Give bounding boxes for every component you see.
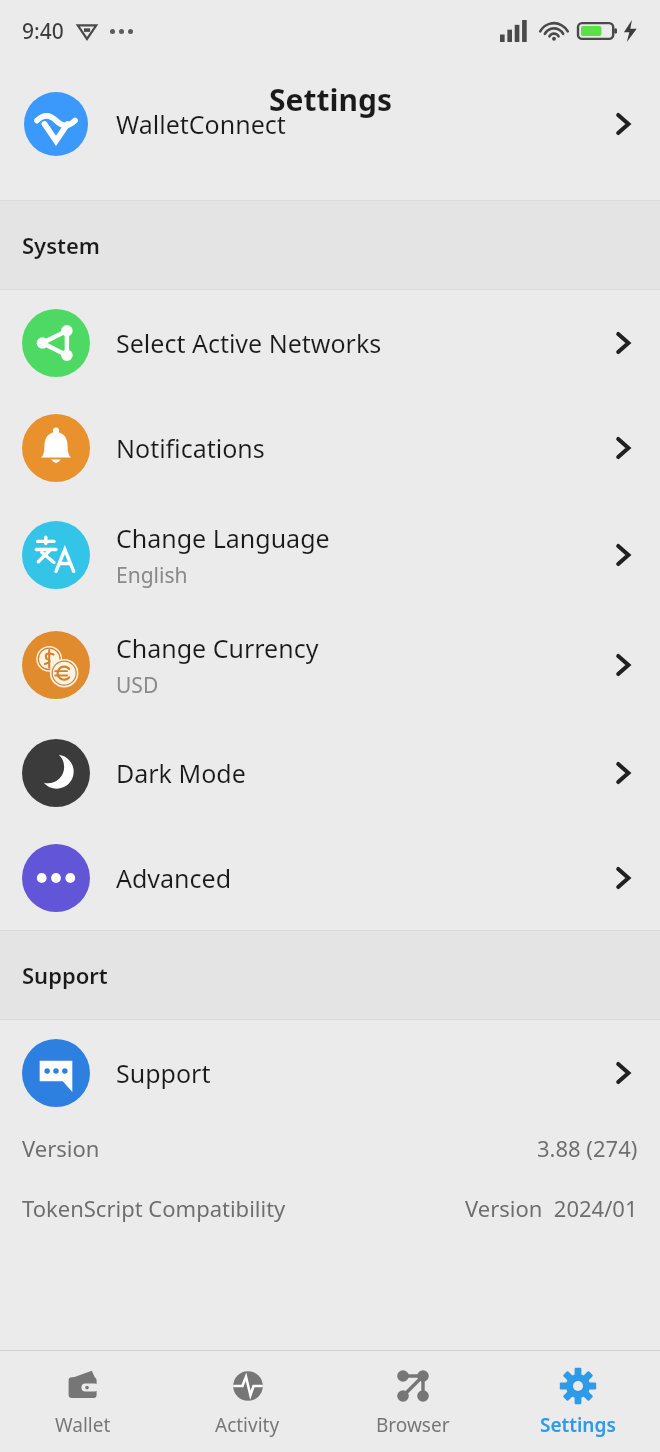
staticText: Support — [22, 960, 108, 990]
staticText: Version 2024/01 — [465, 1193, 638, 1223]
staticText: Change Language — [116, 521, 330, 555]
staticText: Change Currency — [116, 631, 319, 665]
staticText: Dark Mode — [116, 756, 246, 790]
staticText: Version — [22, 1133, 100, 1163]
staticText: Advanced — [116, 861, 232, 895]
button[interactable]: Support — [0, 1020, 660, 1125]
button[interactable]: Change Language — [0, 500, 660, 610]
button[interactable]: Advanced — [0, 825, 660, 930]
button[interactable]: Settings — [495, 1351, 660, 1452]
button[interactable]: Browser — [330, 1351, 495, 1452]
staticText: 9:40 — [22, 17, 64, 46]
staticText: Notifications — [116, 431, 265, 465]
button[interactable]: Notifications — [0, 395, 660, 500]
staticText: Browser — [376, 1412, 450, 1438]
staticText: 3.88 (274) — [537, 1133, 638, 1163]
staticText: Support — [116, 1056, 211, 1090]
staticText: USD — [116, 671, 159, 700]
button[interactable]: Wallet — [0, 1351, 165, 1452]
staticText: WalletConnect — [116, 107, 286, 141]
staticText: English — [116, 561, 188, 590]
staticText: Activity — [215, 1412, 280, 1438]
staticText: Settings — [540, 1412, 616, 1438]
button[interactable]: Activity — [165, 1351, 330, 1452]
staticText: TokenScript Compatibility — [22, 1193, 286, 1223]
button[interactable]: Select Active Networks — [0, 290, 660, 395]
staticText: Settings — [269, 79, 392, 120]
staticText: Wallet — [55, 1412, 111, 1438]
staticText: Select Active Networks — [116, 326, 382, 360]
button[interactable]: Change Currency — [0, 610, 660, 720]
staticText: System — [22, 230, 100, 260]
button[interactable]: WalletConnect — [0, 136, 660, 200]
button[interactable]: Dark Mode — [0, 720, 660, 825]
